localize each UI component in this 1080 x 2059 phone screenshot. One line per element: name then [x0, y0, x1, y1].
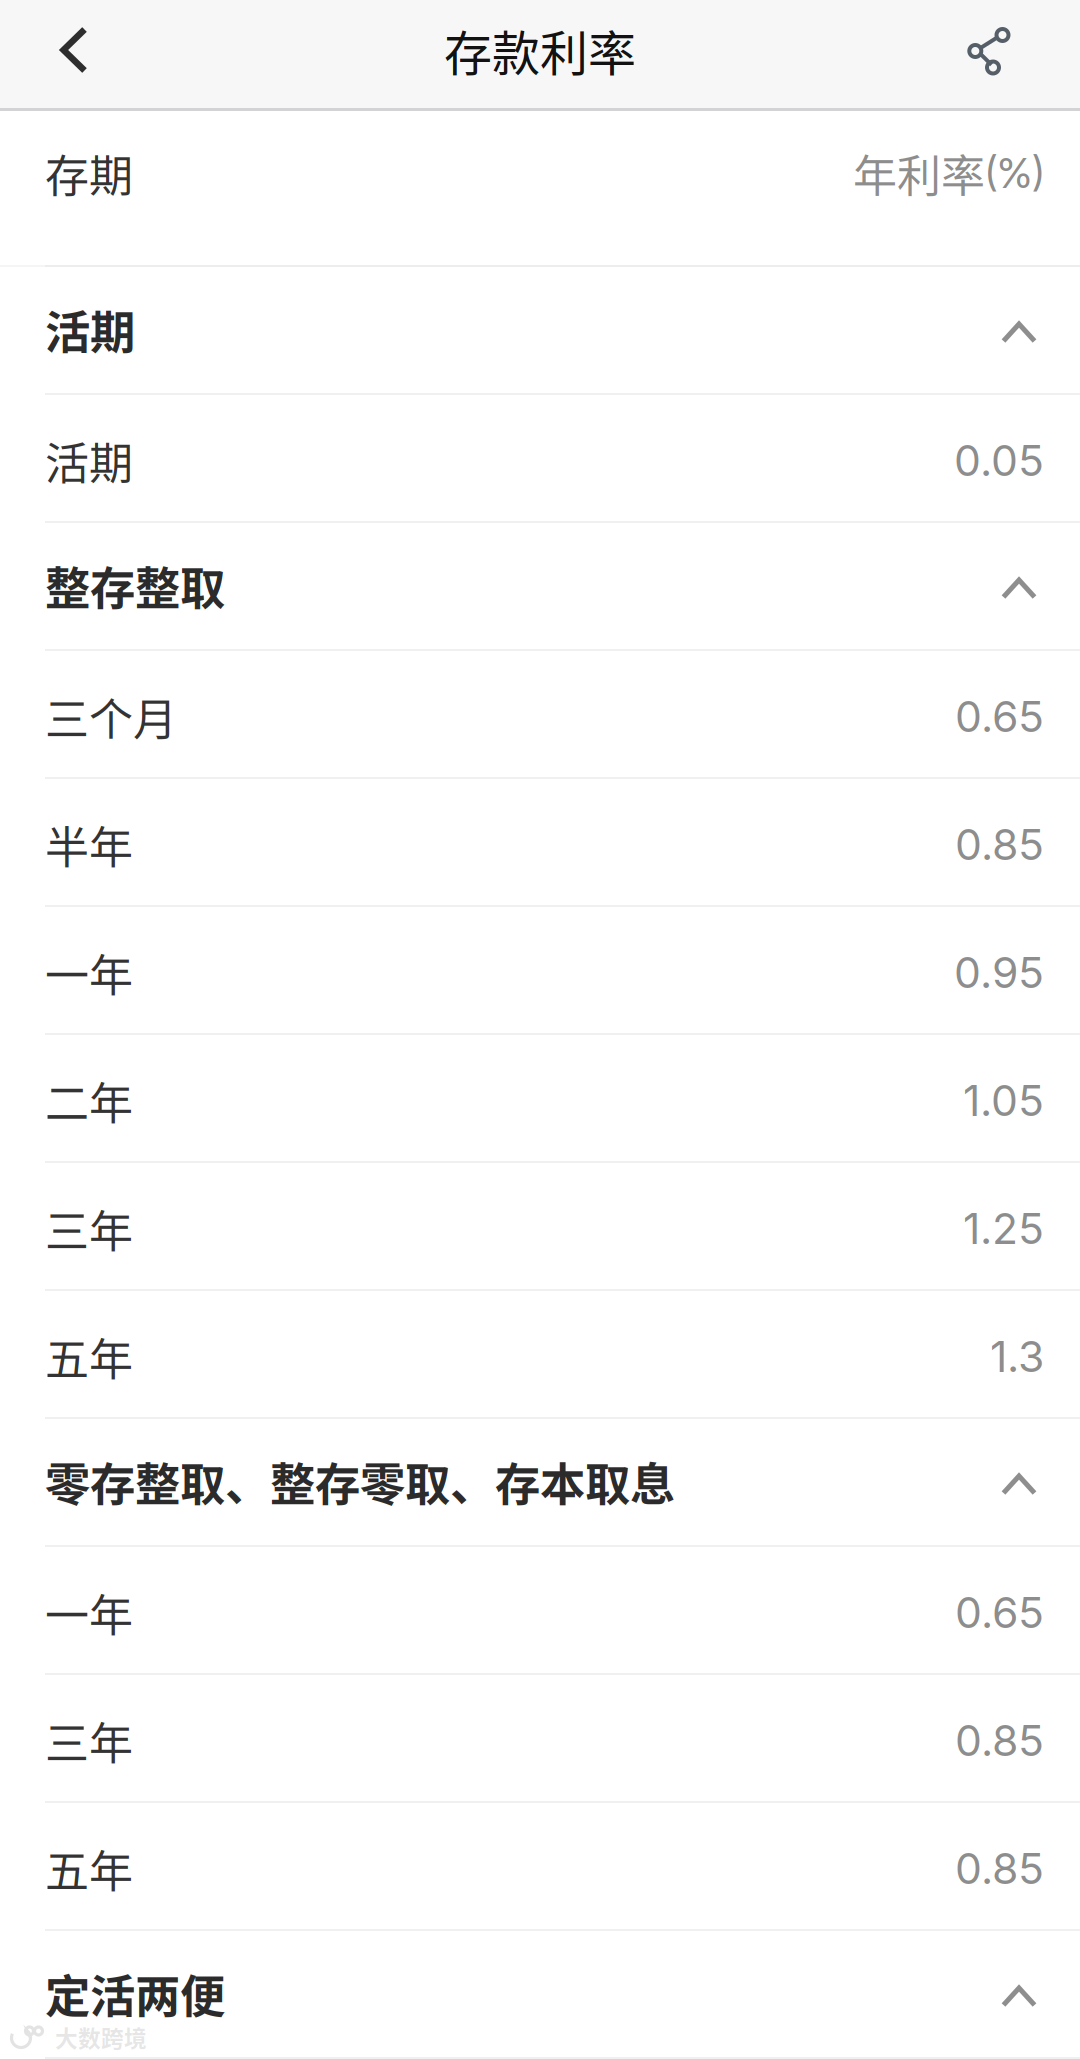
staticText: 0.85	[955, 1715, 1044, 1766]
staticText: 二年	[45, 1069, 133, 1132]
staticText: 0.85	[955, 819, 1044, 870]
staticText: 1.25	[963, 1203, 1044, 1254]
staticText: 活期	[45, 429, 133, 492]
staticText: 一年	[45, 941, 133, 1004]
staticText: 0.95	[954, 947, 1044, 998]
button[interactable]: 定活两便	[0, 1931, 1080, 2057]
staticText: 五年	[45, 1837, 133, 1900]
staticText: 存期	[45, 141, 133, 205]
staticText: 三个月	[45, 685, 177, 748]
button[interactable]: 整存整取	[0, 523, 1080, 649]
button[interactable]: Share	[932, 0, 1080, 100]
staticText: 1.3	[990, 1331, 1044, 1382]
staticText: (%)	[985, 148, 1044, 198]
staticText: 年利率	[853, 141, 985, 205]
staticText: 0.05	[954, 435, 1044, 486]
staticText: 半年	[45, 813, 133, 876]
button[interactable]: Back	[0, 0, 148, 100]
staticText: 0.85	[955, 1843, 1044, 1894]
staticText: 0.65	[955, 691, 1044, 742]
staticText: 定活两便	[45, 1961, 225, 2026]
staticText: 大数跨境	[55, 2021, 147, 2053]
staticText: 零存整取、整存零取、存本取息	[45, 1449, 675, 1514]
staticText: 一年	[45, 1581, 133, 1644]
staticText: 整存整取	[45, 553, 225, 618]
staticText: 存款利率	[444, 15, 636, 85]
staticText: 五年	[45, 1325, 133, 1388]
staticText: 0.65	[955, 1587, 1044, 1638]
button[interactable]: 零存整取、整存零取、存本取息	[0, 1419, 1080, 1545]
staticText: 三年	[45, 1197, 133, 1260]
staticText: 活期	[45, 297, 135, 362]
staticText: 三年	[45, 1709, 133, 1772]
button[interactable]: 活期	[0, 267, 1080, 393]
staticText: 1.05	[963, 1075, 1044, 1126]
